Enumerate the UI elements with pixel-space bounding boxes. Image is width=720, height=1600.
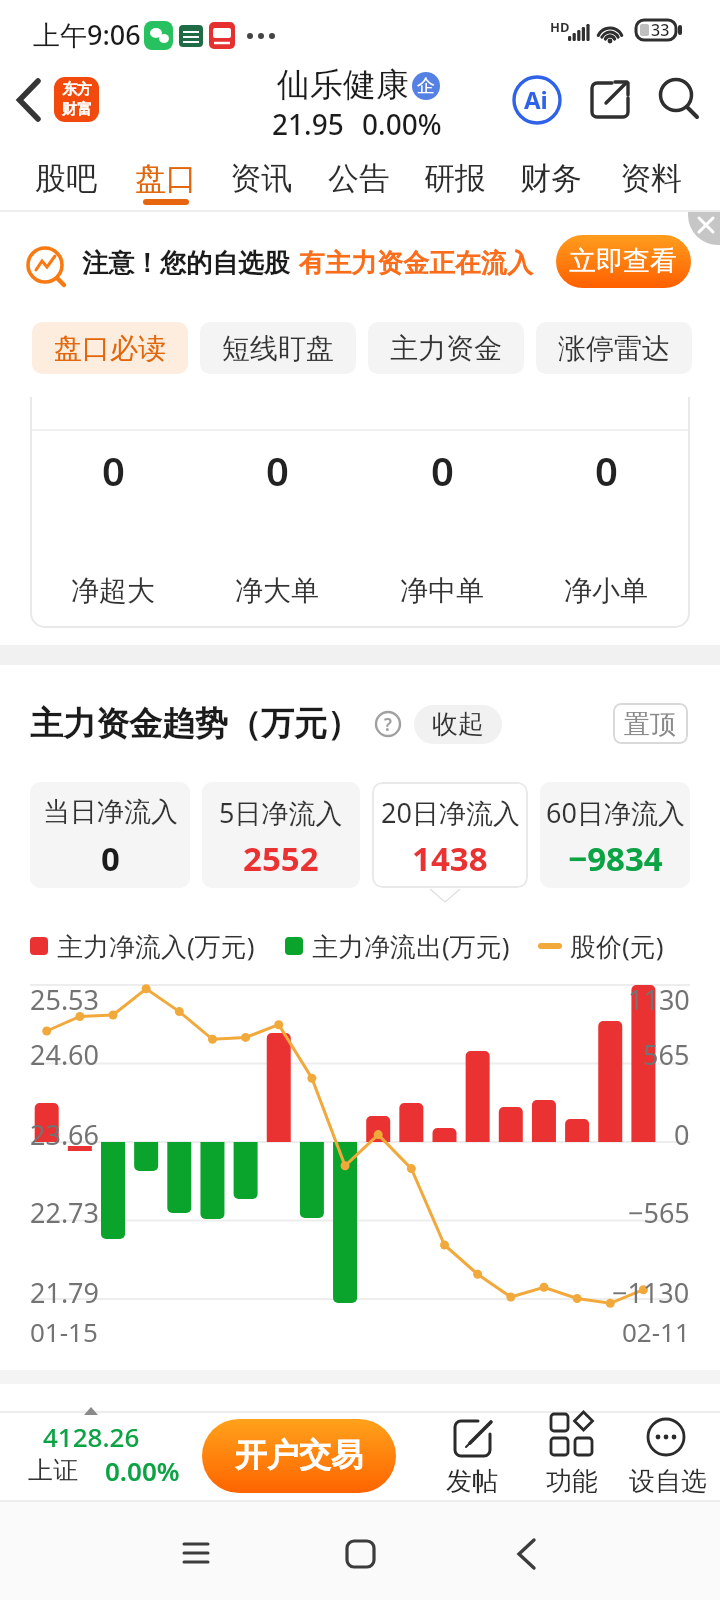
button[interactable] bbox=[120, 150, 212, 210]
button[interactable] bbox=[412, 72, 440, 100]
button[interactable] bbox=[54, 77, 99, 122]
button[interactable] bbox=[414, 705, 502, 744]
staticText: 0 bbox=[102, 443, 125, 497]
staticText: 0 bbox=[431, 443, 454, 497]
staticText: 东方 bbox=[62, 80, 92, 99]
staticText: 研报 bbox=[424, 159, 486, 198]
staticText: 当日净流入 bbox=[43, 795, 178, 829]
button[interactable] bbox=[10, 75, 60, 125]
button[interactable] bbox=[628, 1410, 708, 1498]
staticText: 上午9:06 bbox=[33, 16, 141, 53]
button[interactable] bbox=[678, 212, 720, 254]
staticText: 盘口必读 bbox=[54, 331, 166, 366]
button[interactable] bbox=[200, 322, 356, 374]
staticText: 1438 bbox=[412, 836, 488, 881]
staticText: 5日净流入 bbox=[219, 794, 343, 831]
staticText: 1130 bbox=[628, 981, 690, 1018]
button[interactable] bbox=[536, 322, 692, 374]
staticText: 02-11 bbox=[622, 1314, 690, 1349]
staticText: 股吧 bbox=[35, 159, 97, 198]
staticText: 设自选 bbox=[629, 1465, 707, 1498]
staticText: 22.73 bbox=[30, 1194, 100, 1231]
staticText: 短线盯盘 bbox=[222, 331, 334, 366]
staticText: 企 bbox=[417, 75, 435, 98]
staticText: 立即查看 bbox=[569, 244, 677, 278]
button[interactable] bbox=[32, 322, 188, 374]
staticText: 20日净流入 bbox=[381, 794, 520, 831]
staticText: 净中单 bbox=[400, 573, 484, 608]
staticText: 主力净流入(万元) bbox=[57, 928, 255, 964]
staticText: 公告 bbox=[328, 159, 390, 198]
staticText: 24.60 bbox=[30, 1036, 100, 1073]
button[interactable] bbox=[372, 782, 528, 888]
button[interactable] bbox=[202, 782, 360, 888]
button[interactable] bbox=[313, 150, 405, 210]
button[interactable] bbox=[20, 150, 112, 210]
staticText: ? bbox=[384, 713, 392, 736]
staticText: 盘口 bbox=[135, 159, 197, 198]
staticText: 开户交易 bbox=[235, 1435, 363, 1475]
staticText: 0 bbox=[101, 836, 120, 881]
staticText: 注意！您的自选股 bbox=[82, 247, 290, 280]
button[interactable] bbox=[202, 1419, 396, 1493]
staticText: 上证 bbox=[28, 1455, 78, 1486]
staticText: 主力资金 bbox=[390, 331, 502, 366]
staticText: 资讯 bbox=[230, 159, 292, 198]
staticText: 0 bbox=[595, 443, 618, 497]
button[interactable] bbox=[586, 75, 636, 125]
staticText: 4128.26 bbox=[43, 1419, 140, 1454]
button[interactable] bbox=[440, 1410, 506, 1498]
staticText: 565 bbox=[643, 1036, 690, 1073]
staticText: 净大单 bbox=[235, 573, 319, 608]
button[interactable] bbox=[409, 150, 501, 210]
staticText: 23.66 bbox=[30, 1116, 100, 1153]
staticText: 0.00% bbox=[105, 1453, 180, 1488]
staticText: 0 bbox=[266, 443, 289, 497]
button[interactable] bbox=[652, 75, 702, 125]
button[interactable] bbox=[215, 150, 307, 210]
staticText: 资料 bbox=[620, 159, 682, 198]
staticText: 净小单 bbox=[564, 573, 648, 608]
button[interactable] bbox=[492, 1518, 562, 1588]
staticText: 净超大 bbox=[71, 573, 155, 608]
button[interactable] bbox=[512, 75, 562, 125]
staticText: −565 bbox=[628, 1194, 690, 1231]
staticText: 涨停雷达 bbox=[558, 331, 670, 366]
button[interactable] bbox=[605, 150, 697, 210]
button[interactable] bbox=[540, 782, 690, 888]
button[interactable] bbox=[30, 782, 190, 888]
button[interactable] bbox=[556, 235, 691, 288]
button[interactable] bbox=[20, 1415, 190, 1495]
staticText: 25.53 bbox=[30, 981, 100, 1018]
staticText: HD bbox=[550, 18, 570, 36]
staticText: 主力净流出(万元) bbox=[312, 928, 510, 964]
staticText: 发帖 bbox=[446, 1465, 498, 1498]
staticText: 财富 bbox=[62, 100, 92, 119]
button[interactable] bbox=[505, 150, 597, 210]
staticText: 股价(元) bbox=[570, 928, 664, 964]
staticText: 21.79 bbox=[30, 1274, 100, 1311]
staticText: 仙乐健康 bbox=[277, 64, 409, 106]
staticText: 财务 bbox=[520, 159, 582, 198]
staticText: 33 bbox=[651, 19, 670, 41]
staticText: 有主力资金正在流入 bbox=[299, 247, 533, 280]
staticText: 收起 bbox=[432, 708, 484, 741]
staticText: 置顶 bbox=[624, 708, 676, 741]
staticText: 0 bbox=[674, 1116, 690, 1153]
staticText: 2552 bbox=[243, 836, 319, 881]
staticText: 0.00% bbox=[362, 105, 442, 143]
staticText: 01-15 bbox=[30, 1314, 98, 1349]
staticText: −1130 bbox=[612, 1274, 690, 1311]
staticText: Ai bbox=[524, 83, 548, 116]
staticText: −9834 bbox=[568, 836, 663, 881]
staticText: 21.95 bbox=[272, 105, 344, 143]
staticText: 60日净流入 bbox=[546, 794, 685, 831]
button[interactable] bbox=[368, 322, 524, 374]
button[interactable] bbox=[613, 703, 688, 744]
staticText: 主力资金趋势（万元） bbox=[30, 703, 360, 745]
button[interactable] bbox=[325, 1518, 395, 1588]
staticText: 功能 bbox=[546, 1465, 598, 1498]
button[interactable] bbox=[538, 1410, 604, 1498]
button[interactable] bbox=[160, 1518, 230, 1588]
